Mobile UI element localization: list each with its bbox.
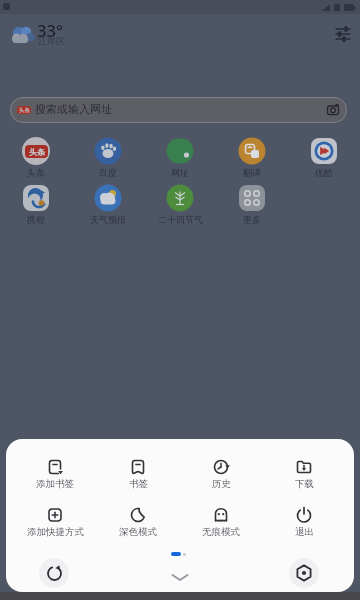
button[interactable]: 添加书签 bbox=[14, 458, 96, 490]
button[interactable]: 携程 bbox=[0, 184, 72, 225]
button[interactable]: 无痕模式 bbox=[180, 506, 262, 538]
staticText: 江岸区 bbox=[38, 35, 82, 46]
button[interactable]: 更多 bbox=[216, 184, 288, 225]
button[interactable]: 头条 bbox=[10, 97, 347, 123]
button[interactable] bbox=[39, 558, 69, 588]
button[interactable]: 头条 bbox=[0, 137, 72, 178]
button[interactable]: 天气预报 bbox=[72, 184, 144, 225]
staticText: 网址 bbox=[171, 167, 189, 178]
button[interactable]: 退出 bbox=[263, 506, 345, 538]
staticText: 历史 bbox=[212, 478, 231, 490]
staticText: 添加快捷方式 bbox=[27, 526, 84, 538]
button[interactable] bbox=[289, 558, 319, 588]
button[interactable]: 二十四节气 bbox=[144, 184, 216, 225]
staticText: 翻译 bbox=[243, 167, 261, 178]
staticText: 添加书签 bbox=[36, 478, 74, 490]
staticText: 天气预报 bbox=[90, 214, 126, 225]
button[interactable]: 百度 bbox=[72, 137, 144, 178]
button[interactable]: 书签 bbox=[97, 458, 179, 490]
button[interactable]: 添加快捷方式 bbox=[14, 506, 96, 538]
staticText: 二十四节气 bbox=[158, 214, 203, 225]
button[interactable]: 下载 bbox=[263, 458, 345, 490]
staticText: 头条 bbox=[19, 107, 30, 114]
button[interactable]: 历史 bbox=[180, 458, 262, 490]
button[interactable]: 深色模式 bbox=[97, 506, 179, 538]
staticText: 头条 bbox=[27, 167, 45, 178]
button[interactable] bbox=[330, 21, 356, 47]
staticText: 携程 bbox=[27, 214, 45, 225]
staticText: 退出 bbox=[295, 526, 314, 538]
staticText: 无痕模式 bbox=[202, 526, 240, 538]
button[interactable]: 翻译 bbox=[216, 137, 288, 178]
staticText: 更多 bbox=[243, 214, 261, 225]
staticText: 33° bbox=[37, 19, 81, 41]
staticText: 深色模式 bbox=[119, 526, 157, 538]
staticText: 头条 bbox=[29, 147, 45, 157]
staticText: 搜索或输入网址 bbox=[35, 102, 112, 116]
button[interactable] bbox=[6, 18, 96, 52]
staticText: 百度 bbox=[99, 167, 117, 178]
button[interactable]: 优酷 bbox=[288, 137, 360, 178]
staticText: 优酷 bbox=[315, 167, 333, 178]
button[interactable]: 网址 bbox=[144, 137, 216, 178]
staticText: 书签 bbox=[129, 478, 148, 490]
button[interactable] bbox=[164, 568, 196, 586]
staticText: 下载 bbox=[295, 478, 314, 490]
